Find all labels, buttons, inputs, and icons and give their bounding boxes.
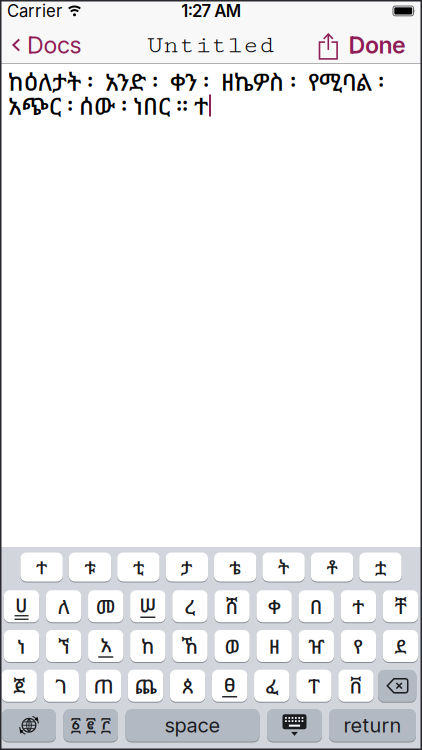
button[interactable]: ቱ [69, 552, 111, 581]
button[interactable]: ሸ [214, 590, 250, 622]
staticText: ፐ [308, 672, 320, 699]
staticText: ቀ [268, 593, 281, 620]
button[interactable]: Share [317, 31, 339, 59]
staticText: አ [100, 631, 111, 658]
button[interactable]: ት [262, 552, 305, 581]
staticText: መ [96, 593, 116, 620]
button[interactable]: ቲ [117, 552, 160, 581]
button[interactable]: ወ [214, 630, 250, 662]
button[interactable]: የ [341, 630, 376, 662]
button[interactable]: Back to Docs [12, 31, 81, 59]
staticText: ፈ [265, 672, 278, 699]
button[interactable]: ከ [130, 630, 166, 662]
button[interactable]: ኸ [172, 630, 208, 662]
button[interactable]: return [329, 709, 416, 741]
staticText: ቷ [375, 554, 386, 580]
staticText: Docs [27, 31, 81, 59]
button[interactable]: ቨ [338, 670, 374, 702]
staticText: 1:27 AM [181, 1, 241, 21]
staticText: ት [278, 554, 289, 580]
staticText: ጠ [93, 672, 113, 699]
button[interactable]: ተ [20, 552, 63, 581]
button[interactable]: መ [88, 590, 123, 622]
staticText: ቶ [326, 554, 337, 580]
staticText: Done [348, 31, 406, 59]
button[interactable]: ደ [383, 630, 418, 662]
button[interactable]: ቀ [256, 590, 292, 622]
staticText: ሀ [15, 591, 28, 618]
staticText: ፀ [224, 671, 236, 698]
staticText: ነ [17, 632, 26, 660]
button[interactable]: ዘ [256, 630, 292, 662]
button[interactable]: ፈ [254, 670, 289, 702]
staticText: ሸ [226, 593, 239, 620]
button[interactable]: ገ [44, 670, 79, 702]
staticText: ቲ [133, 554, 144, 580]
staticText: ቴ [229, 554, 241, 580]
button[interactable]: ቴ [214, 552, 256, 581]
button[interactable]: ነ [4, 630, 39, 662]
button[interactable]: Done [339, 31, 406, 59]
staticText: ተ [36, 554, 47, 580]
staticText: ከ [141, 632, 154, 660]
staticText: ቨ [349, 672, 362, 699]
button[interactable]: ጠ [86, 670, 121, 702]
button[interactable]: ታ [166, 552, 208, 581]
button[interactable]: ፐ [296, 670, 332, 702]
staticText: ገ [55, 672, 67, 699]
staticText: በ [310, 593, 323, 620]
staticText: ኸ [181, 632, 198, 660]
button[interactable]: ፀ [212, 670, 247, 702]
staticText: ኘ [58, 632, 69, 660]
button[interactable]: ሀ [4, 590, 39, 622]
button[interactable]: በ [299, 590, 334, 622]
staticText: ጰ [182, 672, 193, 699]
staticText: Carrier [7, 1, 62, 21]
staticText: የ [353, 632, 363, 660]
staticText: return [343, 713, 401, 737]
staticText: ዠ [308, 632, 324, 660]
button[interactable]: ጰ [170, 670, 205, 702]
staticText: ታ [181, 554, 193, 580]
staticText: ለ [58, 593, 70, 620]
staticText: space [164, 713, 220, 737]
button[interactable]: space [125, 709, 259, 741]
button[interactable]: ቷ [359, 552, 402, 581]
staticText: ቸ [394, 593, 406, 620]
staticText: ቱ [84, 554, 95, 580]
button[interactable]: ቶ [311, 552, 353, 581]
button[interactable]: ቸ [383, 590, 418, 622]
button[interactable]: ሠ [130, 590, 166, 622]
button[interactable]: Numbers [63, 709, 118, 741]
button[interactable]: ጀ [1, 670, 37, 702]
staticText: Untitled [147, 31, 275, 59]
button[interactable]: Delete [378, 670, 416, 702]
staticText: ደ [394, 632, 406, 660]
button[interactable]: ተ [341, 590, 376, 622]
staticText: አጭር ፡ ሰው ፡ ነበር ። ተ [8, 89, 208, 122]
button[interactable]: ኘ [46, 630, 81, 662]
staticText: ተ [352, 593, 364, 620]
staticText: ፩ ፪ ፫ [71, 713, 111, 737]
button[interactable]: ጨ [128, 670, 163, 702]
staticText: ከዕለታት ፡ አንድ ፡ ቀን ፡ ዘኬዎስ ፡ የሚባል ፡ [8, 65, 384, 98]
staticText: ዘ [269, 632, 280, 660]
staticText: ጀ [13, 672, 25, 699]
button[interactable]: Next keyboard [2, 709, 56, 741]
button[interactable]: ረ [172, 590, 208, 622]
staticText: ጨ [134, 672, 156, 699]
button[interactable]: ለ [46, 590, 81, 622]
button[interactable]: ዠ [299, 630, 334, 662]
button[interactable]: አ [88, 630, 123, 662]
staticText: ወ [225, 632, 240, 660]
button[interactable]: Dismiss keyboard [267, 709, 322, 741]
staticText: ሠ [139, 591, 156, 618]
staticText: ረ [184, 593, 195, 620]
